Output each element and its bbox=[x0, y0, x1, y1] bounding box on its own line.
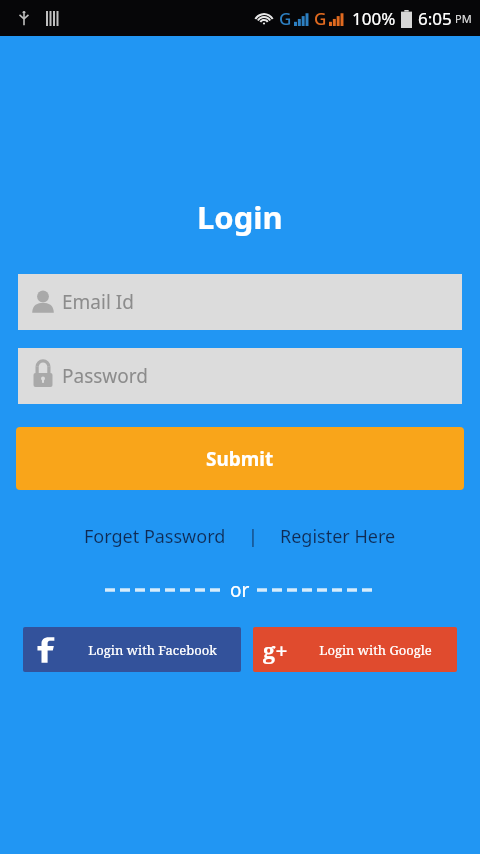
staticText: Login with Google bbox=[319, 641, 432, 659]
button[interactable]: Register Here bbox=[276, 520, 400, 553]
button[interactable]: Login with Facebook bbox=[23, 627, 241, 672]
staticText: Forget Password bbox=[84, 524, 226, 549]
staticText: Password bbox=[62, 363, 148, 389]
staticText: G bbox=[314, 7, 327, 30]
button[interactable]: Login with Google bbox=[253, 627, 457, 672]
button[interactable]: Password bbox=[18, 348, 462, 404]
staticText: Register Here bbox=[280, 524, 396, 549]
staticText: Login bbox=[197, 196, 283, 238]
staticText: Email Id bbox=[62, 289, 134, 315]
button[interactable]: Forget Password bbox=[80, 520, 230, 553]
staticText: G bbox=[279, 7, 292, 30]
staticText: or bbox=[230, 577, 250, 603]
staticText: | bbox=[248, 524, 258, 549]
staticText: PM bbox=[455, 11, 472, 26]
button[interactable]: Submit bbox=[16, 427, 464, 490]
staticText: 6:05 bbox=[418, 7, 452, 30]
staticText: Submit bbox=[206, 446, 274, 472]
staticText: 100% bbox=[352, 7, 396, 30]
button[interactable]: Email Id bbox=[18, 274, 462, 330]
staticText: Login with Facebook bbox=[88, 641, 217, 659]
staticText: g+ bbox=[263, 635, 288, 665]
